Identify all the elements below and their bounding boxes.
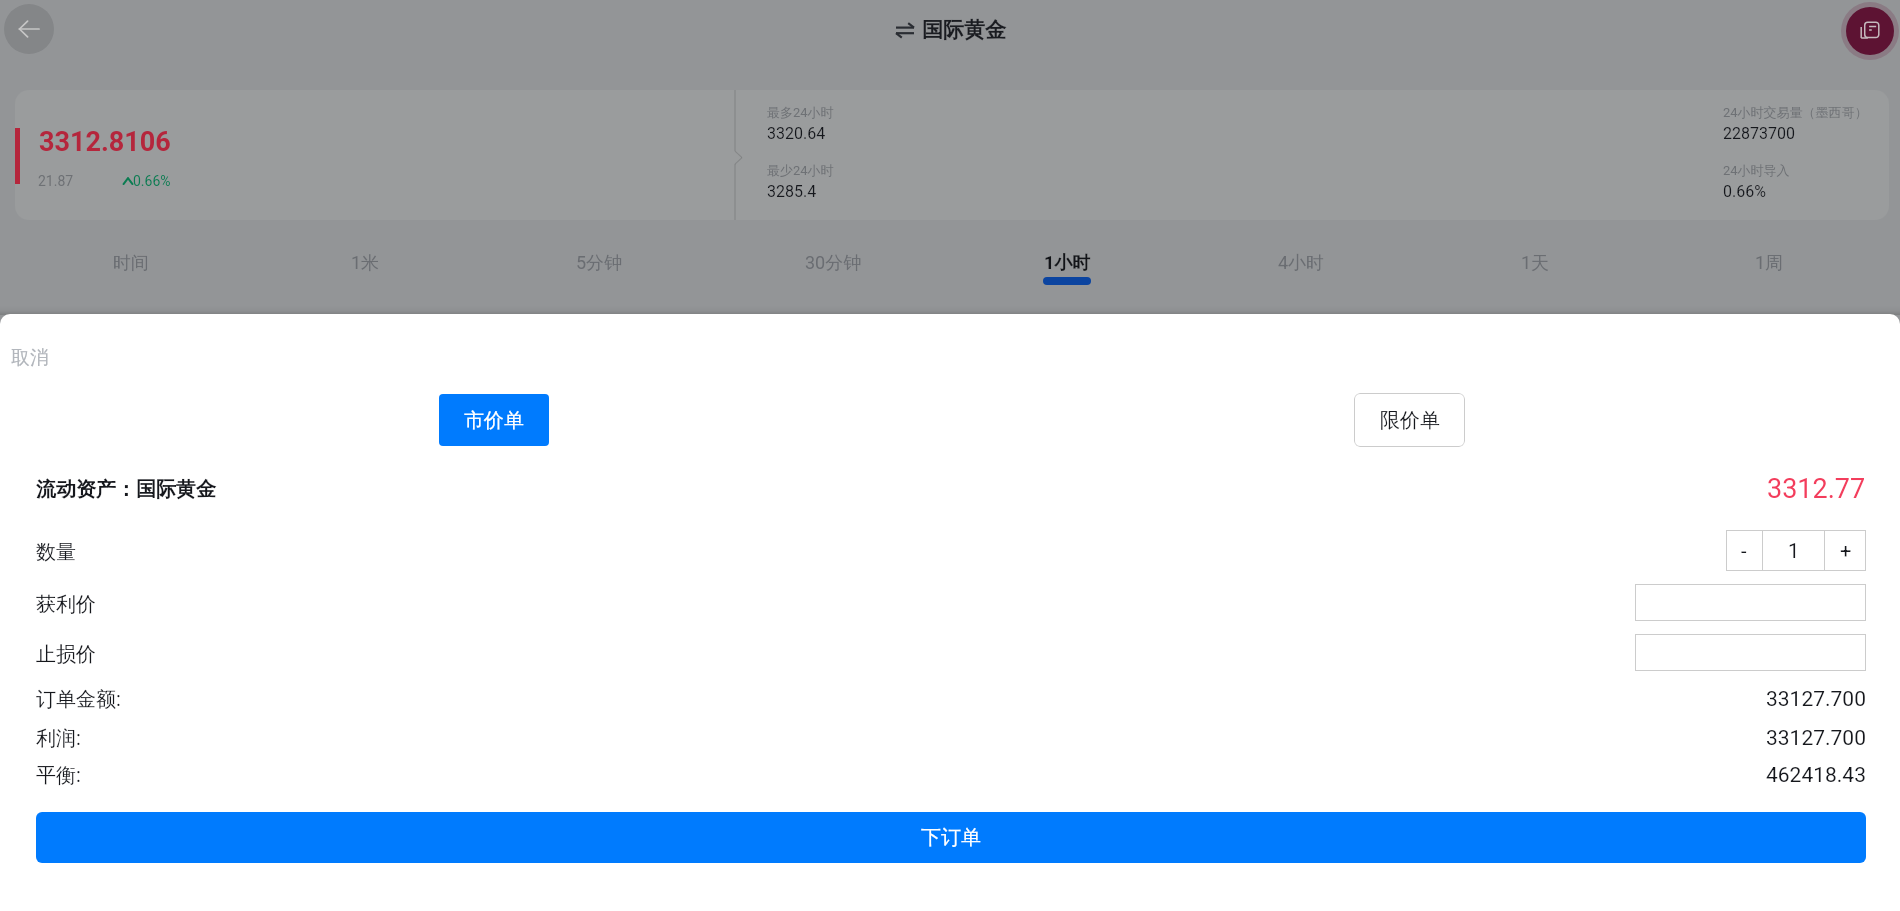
button[interactable]: Orders	[1841, 2, 1899, 60]
button[interactable]: Stop loss price	[1635, 634, 1866, 671]
button[interactable]: 4小时	[1184, 228, 1418, 308]
staticText: 1小时	[1044, 252, 1091, 275]
button[interactable]: Take profit price	[1635, 584, 1866, 621]
staticText: 最少24小时	[767, 162, 834, 178]
staticText: 3312.8106	[39, 126, 171, 158]
staticText: 24小时导入	[1723, 162, 1790, 178]
staticText: 5分钟	[576, 252, 623, 275]
button[interactable]: 30分钟	[716, 228, 950, 308]
staticText: 0.66%	[1723, 182, 1766, 201]
staticText: 462418.43	[1766, 763, 1866, 788]
staticText: 利润:	[36, 726, 81, 751]
staticText: 33127.700	[1766, 687, 1866, 712]
staticText: 取消	[11, 346, 49, 370]
staticText: 数量	[36, 540, 76, 565]
staticText: 1米	[351, 252, 380, 275]
staticText: 1	[1788, 539, 1800, 562]
button[interactable]: 5分钟	[482, 228, 716, 308]
staticText: 0.66%	[133, 173, 171, 189]
button[interactable]: 限价单	[1354, 393, 1465, 447]
staticText: 1周	[1755, 252, 1784, 275]
button[interactable]: 1小时	[950, 228, 1184, 308]
staticText: 24小时交易量（墨西哥）	[1723, 104, 1868, 120]
staticText: 21.87	[38, 173, 74, 189]
button[interactable]: Increase quantity	[1825, 530, 1866, 571]
staticText: +	[1840, 539, 1852, 562]
staticText: 获利价	[36, 592, 96, 617]
staticText: 4小时	[1278, 252, 1325, 275]
staticText: 1天	[1521, 252, 1550, 275]
button[interactable]: Back	[4, 4, 54, 54]
staticText: 3285.4	[767, 182, 817, 201]
staticText: 订单金额:	[36, 687, 121, 712]
staticText: 30分钟	[805, 252, 862, 275]
staticText: 最多24小时	[767, 104, 834, 120]
staticText: 流动资产：国际黄金	[36, 477, 216, 502]
staticText: -	[1741, 539, 1747, 562]
staticText: 3312.77	[1767, 473, 1866, 505]
button[interactable]: Decrease quantity	[1726, 530, 1762, 571]
button[interactable]: 市价单	[439, 394, 549, 446]
staticText: 33127.700	[1766, 726, 1866, 751]
button[interactable]: 下订单	[36, 812, 1866, 863]
button[interactable]: 时间	[14, 228, 248, 308]
staticText: 22873700	[1723, 124, 1795, 143]
staticText: 平衡:	[36, 763, 81, 788]
staticText: 下订单	[921, 825, 981, 850]
staticText: 3320.64	[767, 124, 826, 143]
button[interactable]: 取消	[11, 346, 49, 370]
staticText: 市价单	[464, 408, 524, 433]
staticText: 时间	[113, 252, 149, 275]
staticText: 限价单	[1380, 408, 1440, 433]
staticText: 止损价	[36, 642, 96, 667]
staticText: 国际黄金	[922, 17, 1006, 43]
